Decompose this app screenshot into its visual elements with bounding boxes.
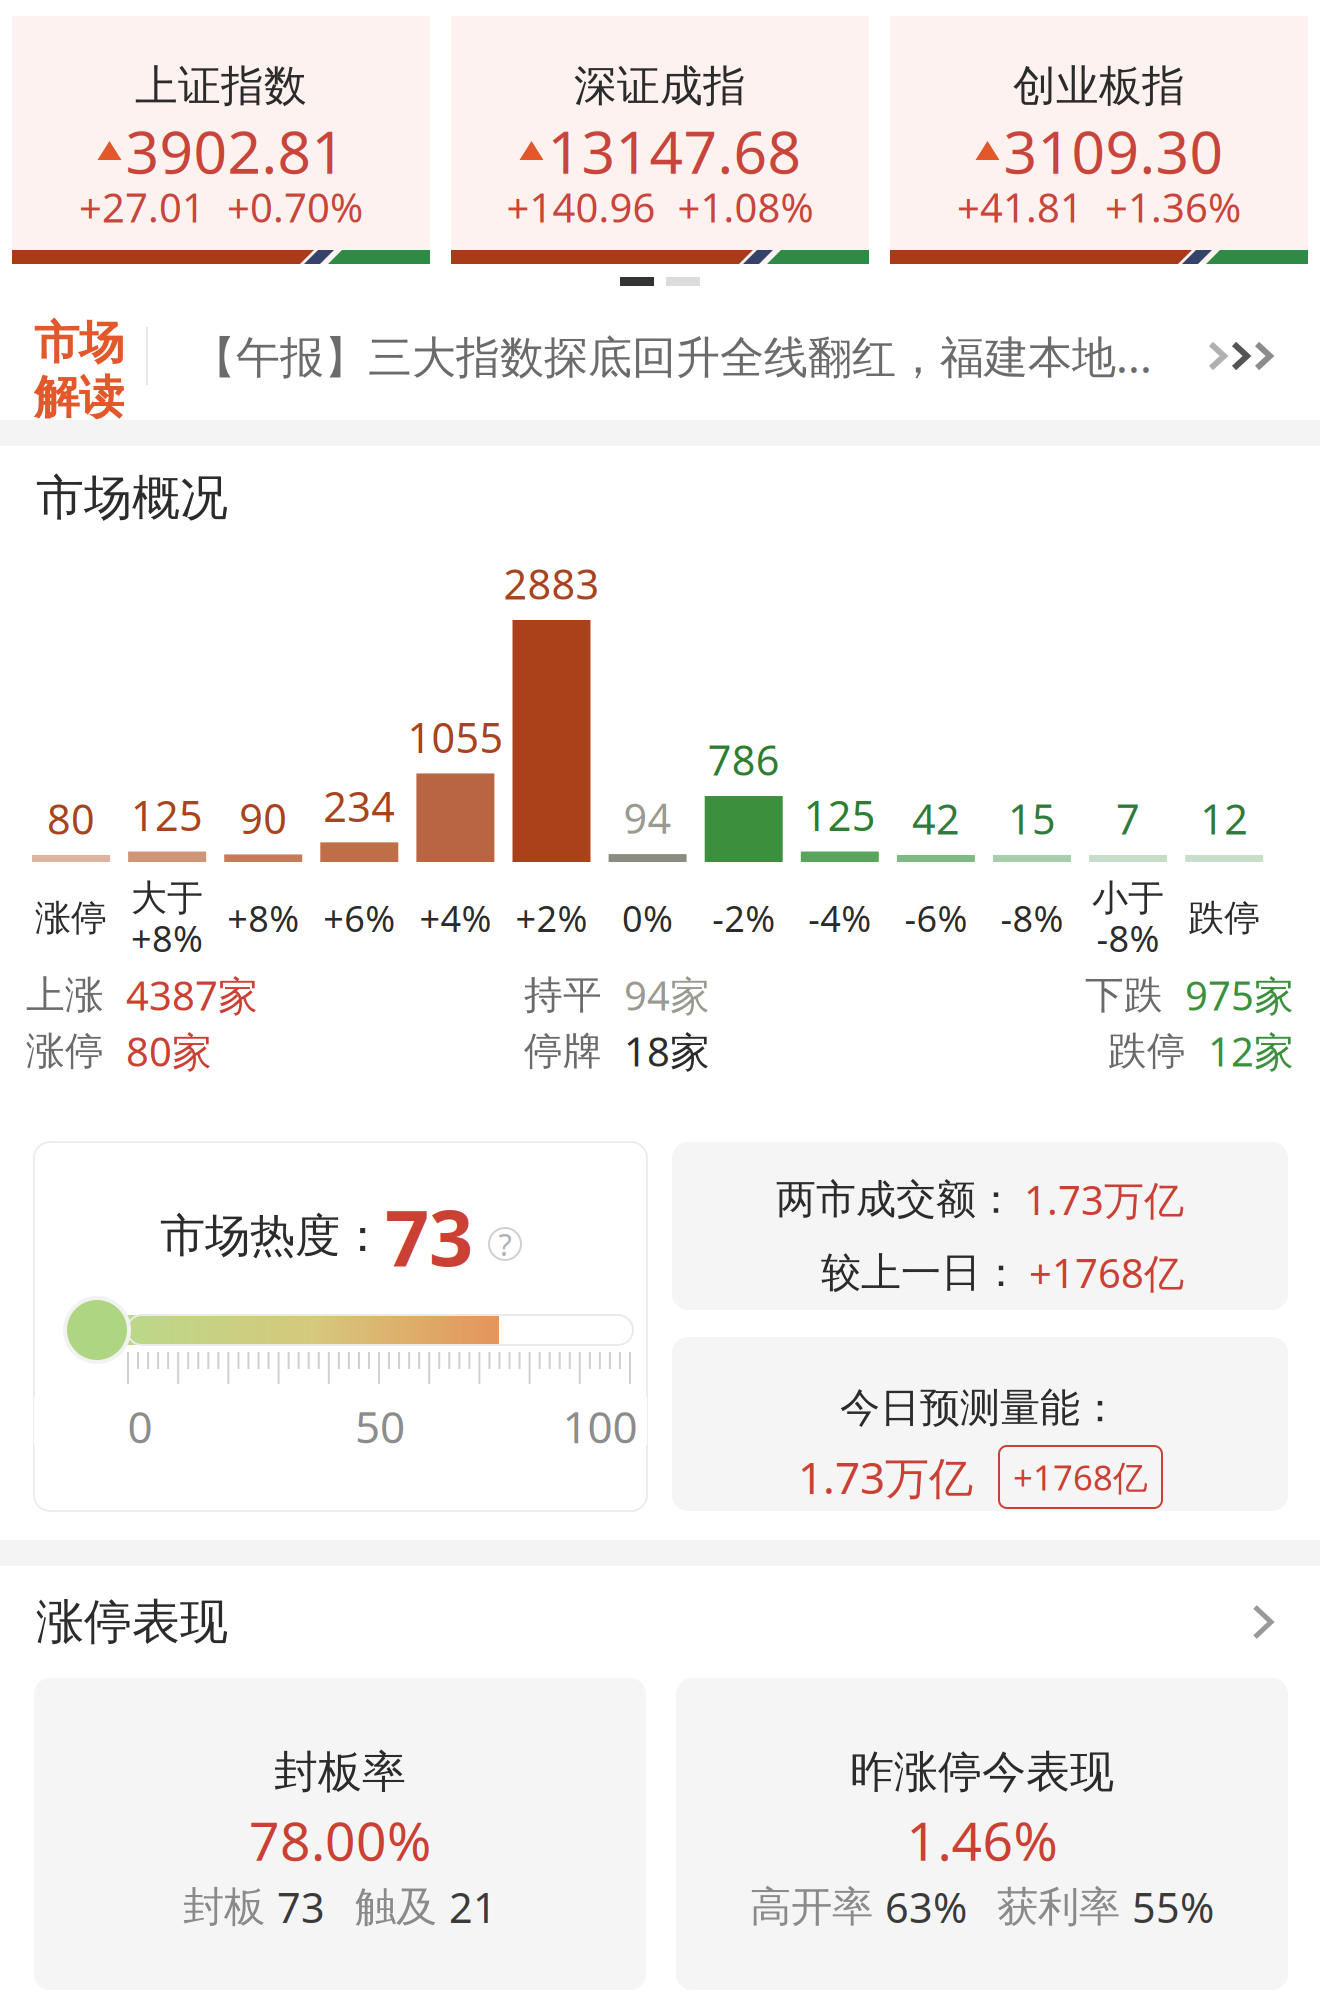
staticText: 较上一日： xyxy=(821,1248,1021,1297)
staticText: 高开率 xyxy=(750,1882,873,1932)
staticText: 持平 xyxy=(524,971,602,1019)
staticText: 73 xyxy=(277,1880,325,1934)
staticText: 63% xyxy=(885,1880,967,1934)
staticText: 4387家 xyxy=(126,968,258,1021)
staticText: 15 xyxy=(1008,791,1056,846)
staticText: 1.73万亿 xyxy=(798,1448,973,1506)
staticText: 94 xyxy=(624,790,672,845)
staticText: +27.01 xyxy=(79,180,205,233)
staticText: 涨停 xyxy=(35,896,107,940)
staticText: ? xyxy=(498,1224,511,1264)
staticText: 1.46% xyxy=(906,1805,1057,1875)
staticText: 市场 xyxy=(34,315,124,371)
staticText: 13147.68 xyxy=(547,112,801,190)
staticText: 18家 xyxy=(624,1024,710,1077)
staticText: 涨停 xyxy=(26,1027,104,1075)
button[interactable]: 上证指数 xyxy=(12,16,430,263)
staticText: 786 xyxy=(708,732,780,787)
staticText: +1768亿 xyxy=(1013,1454,1148,1500)
staticText: 50 xyxy=(355,1397,405,1455)
staticText: 94家 xyxy=(624,968,710,1021)
staticText: 两市成交额： xyxy=(776,1175,1016,1224)
staticText: 解读 xyxy=(34,370,124,425)
staticText: +4% xyxy=(419,894,491,942)
staticText: +0.70% xyxy=(227,180,363,233)
staticText: +1.36% xyxy=(1105,180,1241,233)
staticText: 975家 xyxy=(1185,968,1294,1021)
staticText: 封板率 xyxy=(274,1745,406,1799)
button[interactable]: 封板率 xyxy=(34,1678,646,1990)
staticText: 0% xyxy=(622,894,673,942)
staticText: 3109.30 xyxy=(1003,112,1223,190)
staticText: 78.00% xyxy=(249,1805,431,1875)
staticText: +1768亿 xyxy=(1029,1246,1184,1299)
staticText: 7 xyxy=(1116,791,1140,846)
staticText: 55% xyxy=(1132,1880,1214,1934)
button[interactable]: 深证成指 xyxy=(451,16,869,263)
staticText: +1.08% xyxy=(677,180,813,233)
button[interactable]: 涨停表现 xyxy=(0,1566,1320,1678)
staticText: +8% xyxy=(227,894,299,942)
staticText: 12 xyxy=(1200,791,1248,846)
staticText: 80 xyxy=(47,791,95,846)
staticText: 停牌 xyxy=(524,1027,602,1075)
staticText: 封板 xyxy=(183,1882,265,1932)
staticText: 1.73万亿 xyxy=(1024,1173,1184,1226)
staticText: 跌停 xyxy=(1108,1027,1186,1075)
staticText: 触及 xyxy=(355,1882,437,1932)
staticText: 0 xyxy=(127,1397,152,1455)
staticText: -2% xyxy=(712,894,775,942)
staticText: 1055 xyxy=(407,710,503,764)
staticText: 2883 xyxy=(503,556,599,611)
staticText: 80家 xyxy=(126,1024,212,1077)
staticText: +6% xyxy=(323,894,395,942)
staticText: 3902.81 xyxy=(125,112,345,190)
staticText: 涨停表现 xyxy=(36,1592,228,1651)
staticText: 创业板指 xyxy=(1013,60,1185,112)
staticText: 下跌 xyxy=(1085,971,1163,1019)
staticText: +140.96 xyxy=(506,180,655,233)
staticText: 深证成指 xyxy=(574,60,746,112)
staticText: -8% xyxy=(1097,914,1160,962)
staticText: -4% xyxy=(808,894,871,942)
staticText: 12家 xyxy=(1208,1024,1294,1077)
button[interactable]: 市场 xyxy=(0,300,1320,412)
staticText: 125 xyxy=(804,788,876,842)
staticText: +8% xyxy=(131,914,203,962)
staticText: +41.81 xyxy=(957,180,1083,233)
staticText: 获利率 xyxy=(997,1882,1120,1932)
button[interactable]: 昨涨停今表现 xyxy=(676,1678,1288,1990)
staticText: 大于 xyxy=(131,876,203,920)
staticText: -8% xyxy=(1000,894,1063,942)
staticText: 跌停 xyxy=(1188,896,1260,940)
staticText: 上证指数 xyxy=(135,60,307,112)
staticText: 市场概况 xyxy=(36,468,228,527)
staticText: 昨涨停今表现 xyxy=(850,1745,1114,1799)
staticText: 市场热度： xyxy=(160,1208,385,1264)
staticText: 234 xyxy=(323,778,395,833)
staticText: 小于 xyxy=(1092,876,1164,920)
staticText: 今日预测量能： xyxy=(840,1383,1120,1432)
staticText: 上涨 xyxy=(26,971,104,1019)
staticText: -6% xyxy=(904,894,967,942)
staticText: 100 xyxy=(562,1397,637,1455)
staticText: 73 xyxy=(385,1185,473,1287)
staticText: 【午报】三大指数探底回升全线翻红，福建本地... xyxy=(192,327,1152,385)
staticText: 42 xyxy=(912,791,960,846)
staticText: 125 xyxy=(131,788,203,842)
staticText: 90 xyxy=(239,791,287,845)
staticText: +2% xyxy=(515,894,587,942)
button[interactable]: 创业板指 xyxy=(890,16,1308,263)
staticText: 21 xyxy=(449,1880,497,1934)
